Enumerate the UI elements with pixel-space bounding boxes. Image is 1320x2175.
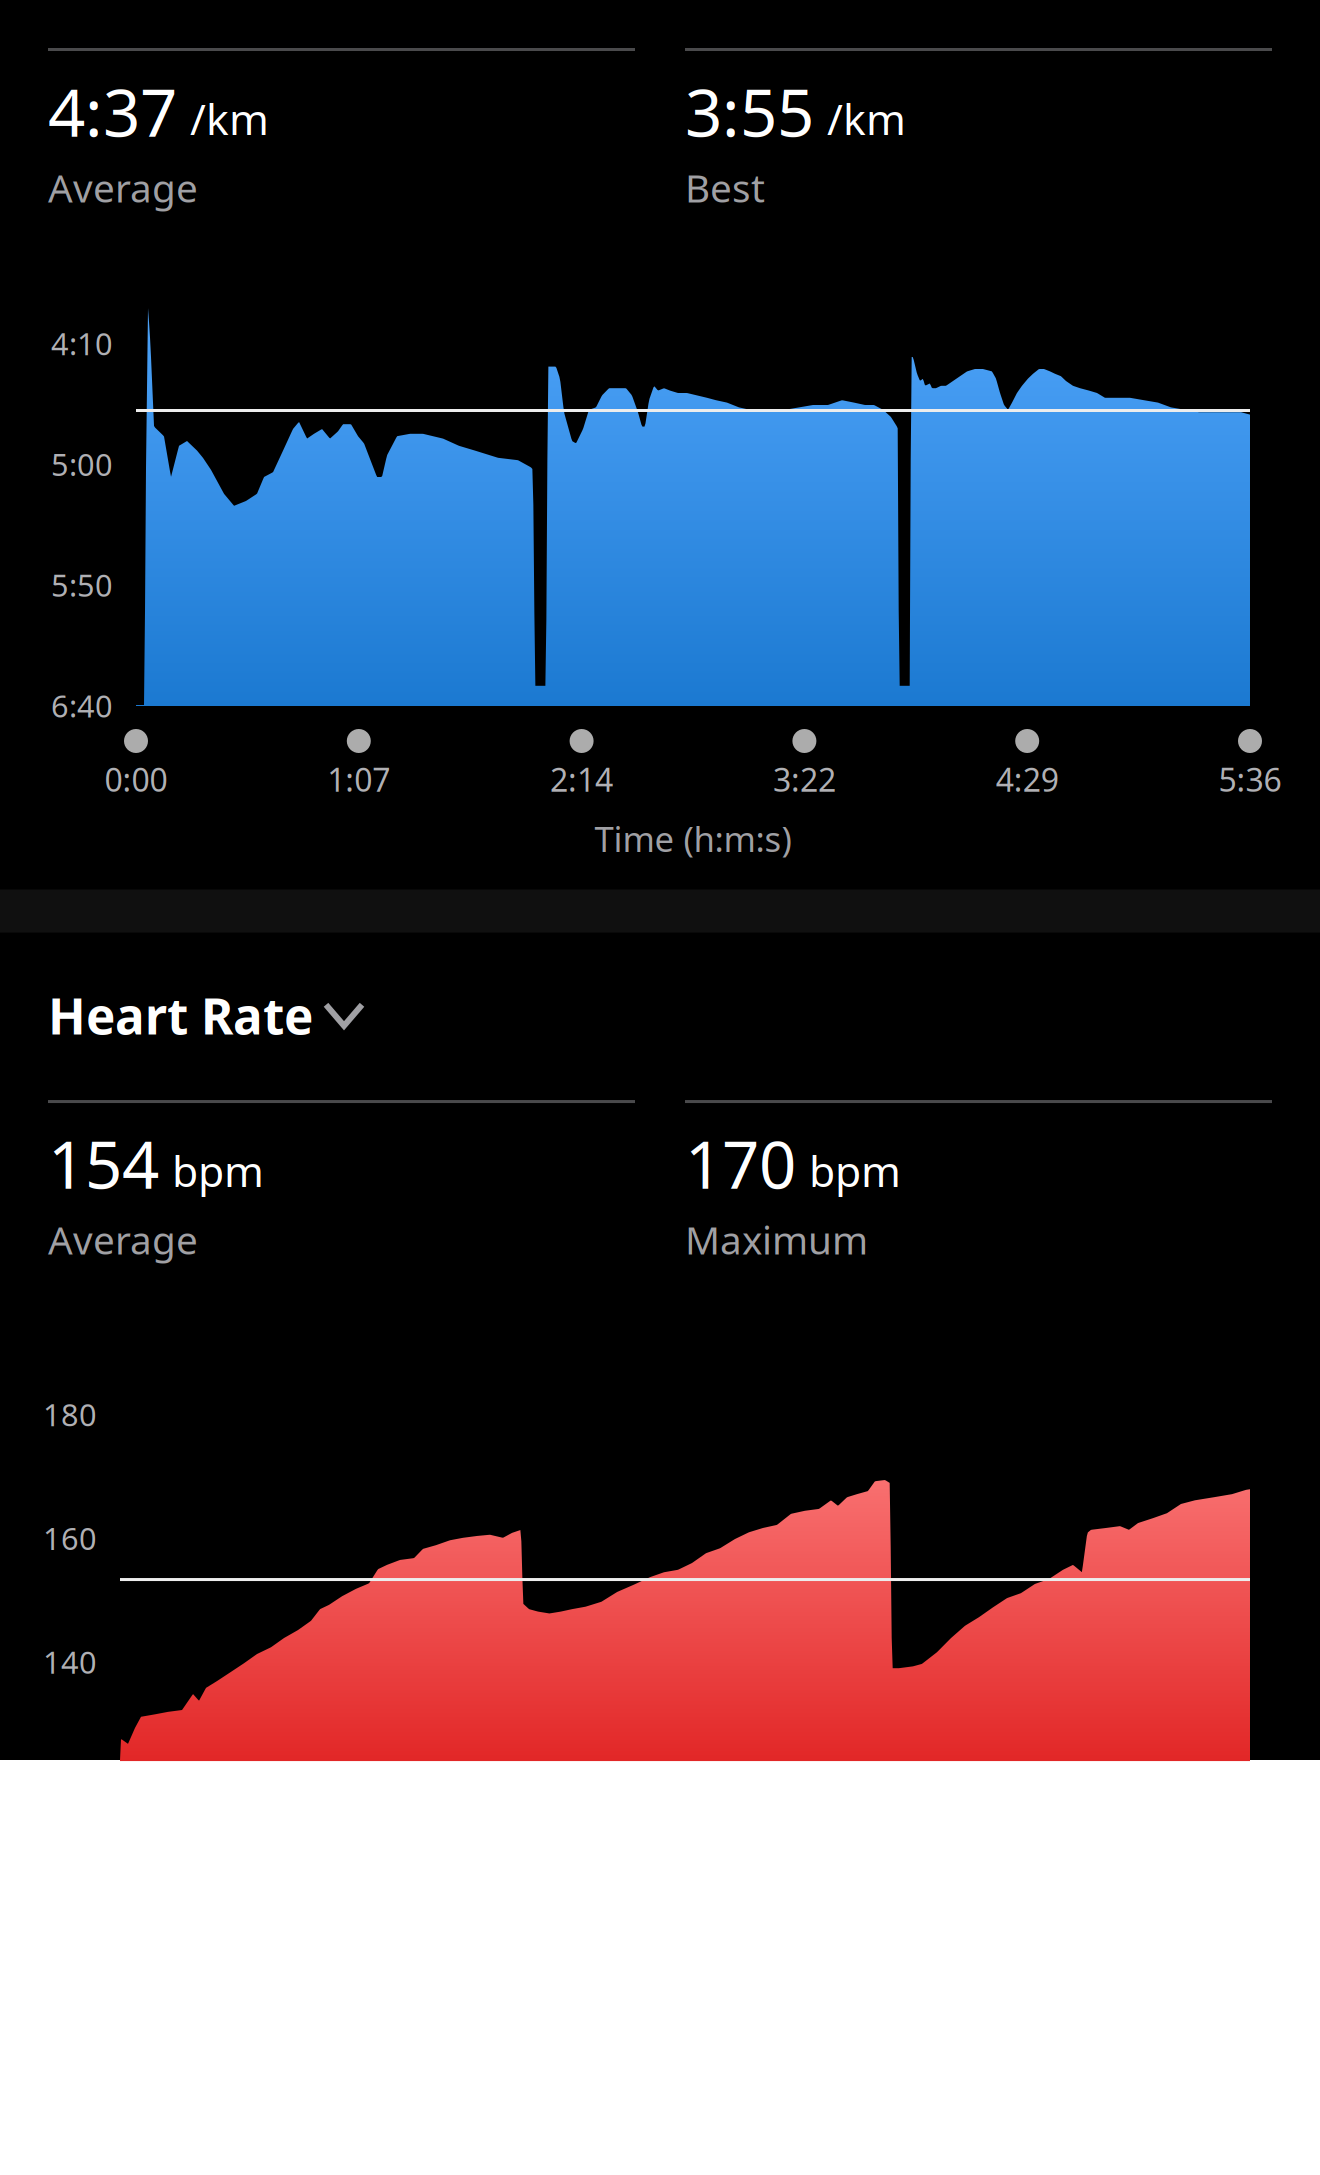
staticText: 4:10 (51, 323, 113, 364)
staticText: 5:50 (51, 564, 113, 605)
staticText: Time (h:m:s) (594, 815, 791, 861)
staticText: 5:36 (1218, 758, 1281, 800)
button[interactable]: Heart Rate (48, 982, 362, 1048)
staticText: Average (48, 162, 198, 213)
staticText: /km (190, 90, 269, 147)
staticText: 2:14 (550, 758, 613, 800)
staticText: Maximum (685, 1214, 868, 1265)
staticText: 3:55 (685, 68, 814, 155)
staticText: 180 (43, 1394, 97, 1435)
staticText: 3:22 (773, 758, 836, 800)
staticText: 140 (43, 1641, 97, 1682)
staticText: Heart Rate (48, 982, 313, 1048)
staticText: Average (48, 1214, 198, 1265)
staticText: 170 (685, 1120, 796, 1207)
staticText: 154 (48, 1120, 159, 1207)
staticText: 6:40 (51, 685, 113, 726)
staticText: 160 (43, 1518, 97, 1558)
staticText: 5:00 (51, 444, 113, 484)
staticText: bpm (172, 1142, 264, 1199)
staticText: 4:37 (48, 68, 177, 155)
staticText: 4:29 (996, 758, 1059, 800)
staticText: 1:07 (327, 758, 390, 800)
staticText: bpm (809, 1142, 901, 1199)
staticText: /km (827, 90, 906, 147)
staticText: Best (685, 162, 765, 213)
staticText: 0:00 (104, 758, 167, 800)
